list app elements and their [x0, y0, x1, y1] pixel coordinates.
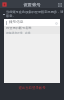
button[interactable]: App: [1, 1, 8, 8]
button[interactable]: 账号信息: [4, 19, 60, 26]
button[interactable]: Menu: [56, 1, 63, 8]
staticText: 退出当前登录账号: [18, 86, 46, 90]
staticText: 设备状态正常: [6, 31, 23, 34]
staticText: 账号信息: [9, 20, 24, 25]
staticText: 已登录的账号名称: [6, 26, 32, 30]
button[interactable]: Settings: [53, 20, 59, 26]
staticText: 当前账号在此设备的登录状态已同步，请留意。: [6, 10, 64, 18]
staticText: 设置·账号: [23, 2, 41, 7]
button[interactable]: 已登录的账号名称: [4, 26, 60, 34]
button[interactable]: 退出当前登录账号: [16, 85, 48, 91]
staticText: 在线: [25, 31, 31, 34]
